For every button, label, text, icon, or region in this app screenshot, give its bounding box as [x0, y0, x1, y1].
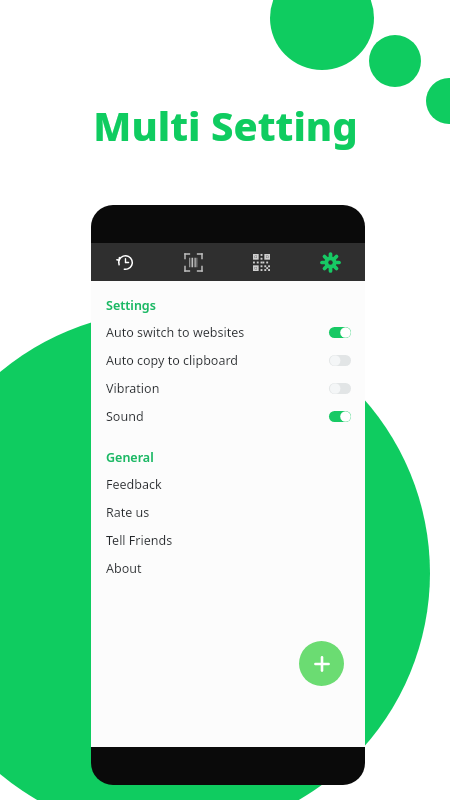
button[interactable]: Rate us — [91, 498, 365, 526]
button[interactable]: On — [329, 327, 351, 338]
button[interactable]: Tell Friends — [91, 526, 365, 554]
staticText: Tell Friends — [106, 532, 173, 549]
button[interactable]: Add — [299, 641, 344, 686]
button[interactable]: On — [329, 411, 351, 422]
button[interactable]: Scan barcode — [159, 243, 227, 281]
button[interactable]: Settings — [296, 243, 365, 281]
button[interactable]: Sound — [91, 402, 365, 430]
staticText: Vibration — [106, 380, 160, 397]
button[interactable]: Feedback — [91, 470, 365, 498]
button[interactable]: QR code — [227, 243, 296, 281]
button[interactable]: Auto copy to clipboard — [91, 346, 365, 374]
staticText: Auto switch to websites — [106, 324, 245, 341]
staticText: About — [106, 560, 142, 577]
button[interactable]: Off — [329, 383, 351, 394]
staticText: General — [106, 449, 154, 466]
staticText: Feedback — [106, 476, 162, 493]
staticText: Rate us — [106, 504, 150, 521]
staticText: Sound — [106, 408, 144, 425]
staticText: Settings — [106, 297, 156, 314]
staticText: Multi Setting — [93, 98, 358, 152]
button[interactable]: Auto switch to websites — [91, 318, 365, 346]
staticText: Auto copy to clipboard — [106, 352, 238, 369]
button[interactable]: About — [91, 554, 365, 582]
button[interactable]: Off — [329, 355, 351, 366]
button[interactable]: Vibration — [91, 374, 365, 402]
button[interactable]: History — [91, 243, 159, 281]
